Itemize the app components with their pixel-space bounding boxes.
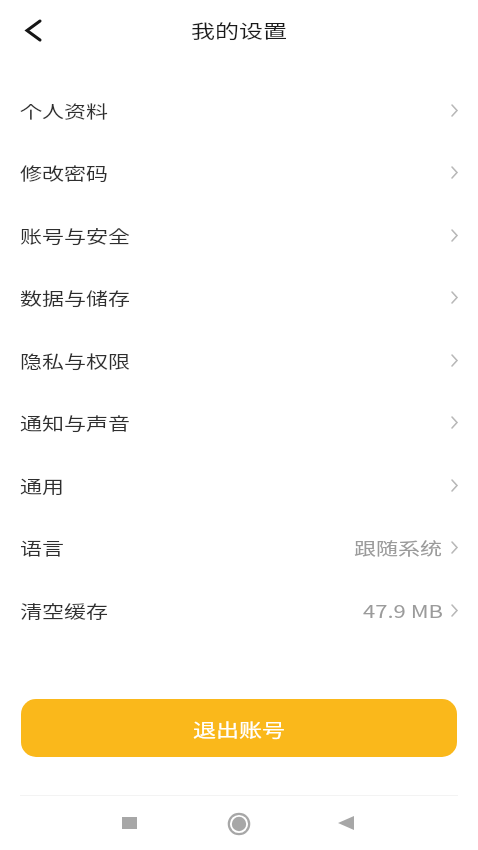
button[interactable]: Back bbox=[11, 8, 55, 52]
button[interactable]: 账号与安全 bbox=[0, 203, 478, 266]
staticText: 通知与声音 bbox=[20, 409, 131, 434]
button[interactable]: Recent apps bbox=[105, 799, 153, 847]
staticText: 通用 bbox=[20, 472, 65, 497]
button[interactable]: Back bbox=[322, 799, 370, 847]
staticText: 语言 bbox=[20, 534, 65, 559]
button[interactable]: Home bbox=[215, 800, 263, 848]
staticText: 个人资料 bbox=[20, 97, 109, 122]
button[interactable]: 通知与声音 bbox=[0, 390, 478, 453]
staticText: 跟随系统 bbox=[354, 534, 443, 559]
button[interactable]: 隐私与权限 bbox=[0, 328, 478, 391]
button[interactable]: 语言 bbox=[0, 515, 478, 578]
button[interactable]: 通用 bbox=[0, 453, 478, 516]
staticText: 账号与安全 bbox=[20, 222, 131, 247]
staticText: 隐私与权限 bbox=[20, 347, 131, 372]
staticText: 数据与储存 bbox=[20, 284, 131, 309]
staticText: 我的设置 bbox=[191, 16, 287, 43]
button[interactable]: 个人资料 bbox=[0, 78, 478, 141]
button[interactable]: 数据与储存 bbox=[0, 265, 478, 328]
staticText: 退出账号 bbox=[193, 716, 285, 741]
staticText: 47.9 MB bbox=[363, 597, 443, 622]
button[interactable]: 退出账号 bbox=[21, 699, 457, 757]
staticText: 修改密码 bbox=[20, 159, 109, 184]
button[interactable]: 清空缓存 bbox=[0, 578, 478, 641]
staticText: 清空缓存 bbox=[20, 597, 109, 622]
button[interactable]: 修改密码 bbox=[0, 140, 478, 203]
